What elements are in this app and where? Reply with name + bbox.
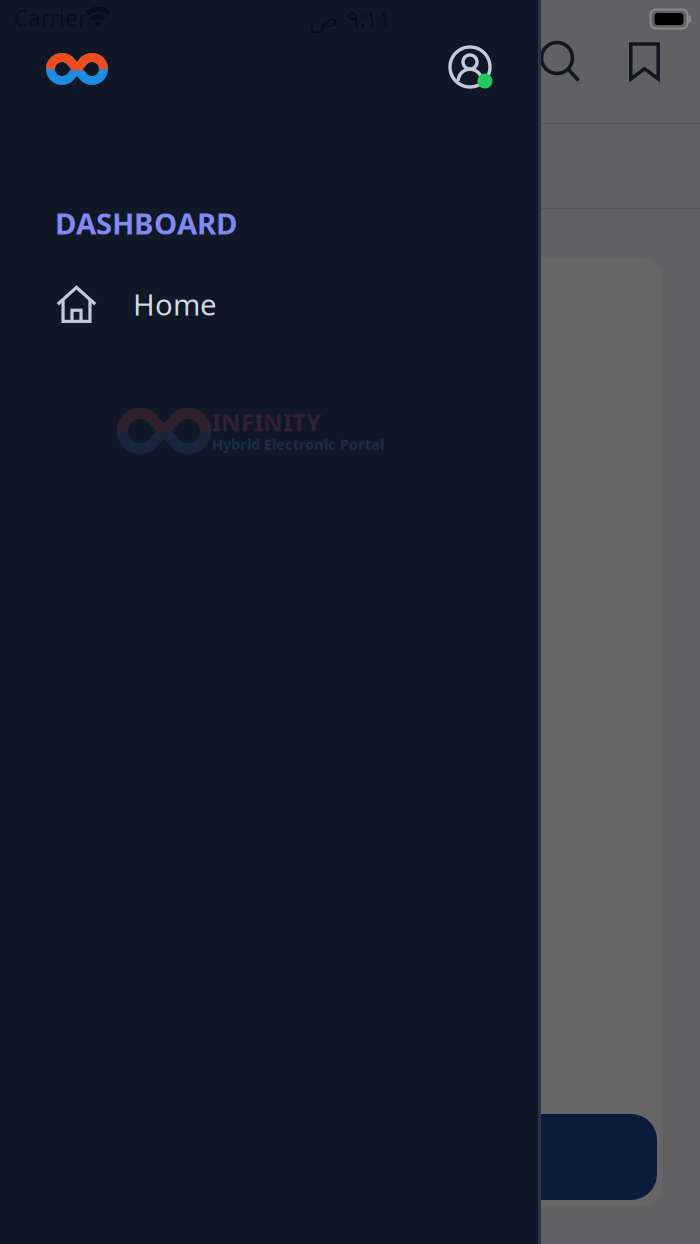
staticText: Hybrid Electronic Portal <box>212 434 384 454</box>
button[interactable]: Bookmarks <box>629 42 660 81</box>
staticText: INFINITY <box>212 406 321 438</box>
button[interactable]: Search <box>541 42 581 82</box>
staticText: ٩:١١ ص <box>309 2 391 34</box>
staticText: Home <box>133 284 217 323</box>
staticText: DASHBOARD <box>55 203 237 242</box>
button[interactable]: Scan Barcode <box>72 1114 657 1200</box>
staticText: Carrier <box>14 3 87 33</box>
button[interactable]: Infinity <box>46 53 108 85</box>
button[interactable]: Profile <box>450 47 492 89</box>
button[interactable]: Home <box>0 278 538 330</box>
